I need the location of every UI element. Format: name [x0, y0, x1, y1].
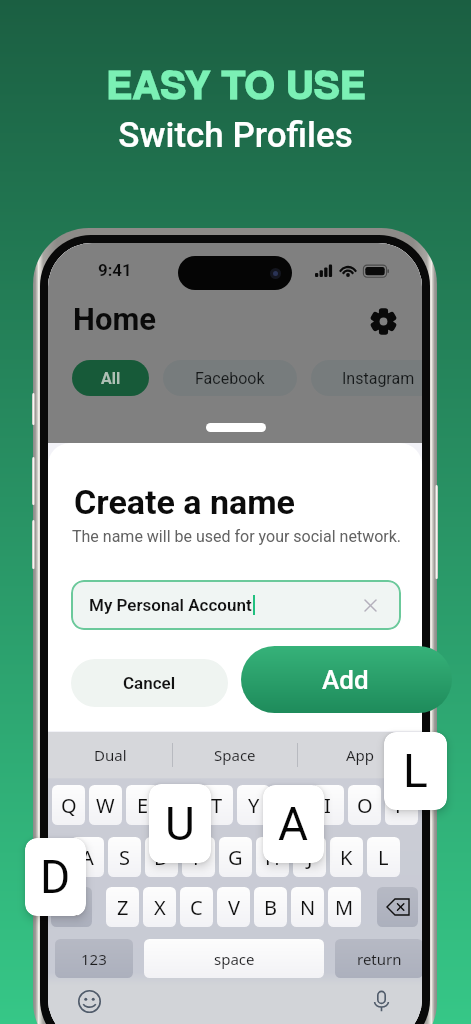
staticText: The name will be used for your social ne… [72, 527, 402, 546]
button[interactable]: 123 [55, 939, 133, 978]
staticText: Home [73, 301, 156, 337]
staticText: Y [248, 792, 260, 819]
staticText: Instagram [342, 369, 415, 388]
staticText: E [137, 792, 149, 819]
staticText: W [96, 792, 115, 819]
staticText: Z [117, 894, 129, 921]
button[interactable]: G [219, 837, 252, 877]
staticText: Dual [94, 745, 127, 765]
staticText: F [193, 844, 204, 871]
staticText: D [154, 844, 169, 871]
staticText: EASY TO USE [106, 55, 366, 111]
staticText: H [265, 844, 280, 871]
staticText: X [154, 894, 166, 921]
staticText: A [81, 844, 94, 871]
button[interactable]: Dual [48, 732, 172, 777]
staticText: J [307, 844, 313, 871]
button[interactable]: Emoji keyboard [76, 988, 102, 1014]
button[interactable]: F [182, 837, 215, 877]
button[interactable]: I [311, 785, 344, 825]
button[interactable]: Dictation [368, 988, 394, 1014]
staticText: U [165, 797, 195, 851]
button[interactable]: Space [173, 732, 297, 777]
button[interactable]: O [348, 785, 381, 825]
button[interactable]: space [144, 939, 324, 978]
button[interactable]: E [126, 785, 159, 825]
button[interactable]: T [200, 785, 233, 825]
button[interactable] [51, 887, 92, 927]
staticText: Cancel [123, 673, 176, 693]
button[interactable]: Facebook [163, 360, 297, 396]
button[interactable]: M [328, 887, 361, 927]
staticText: All [101, 369, 121, 388]
button[interactable]: R [163, 785, 196, 825]
button[interactable]: U [274, 785, 307, 825]
button[interactable]: Y [237, 785, 270, 825]
staticText: T [211, 792, 223, 819]
button[interactable]: All [72, 360, 149, 396]
button[interactable]: Q [52, 785, 85, 825]
staticText: 9:41 [98, 260, 132, 280]
button[interactable] [377, 887, 418, 927]
staticText: S [119, 844, 130, 871]
button[interactable]: V [217, 887, 250, 927]
button[interactable]: X [143, 887, 176, 927]
staticText: Switch Profiles [118, 115, 353, 156]
button[interactable]: U [149, 784, 211, 863]
staticText: C [190, 894, 203, 921]
button[interactable]: W [89, 785, 122, 825]
button[interactable]: L [384, 732, 447, 810]
button[interactable]: Instagram [311, 360, 422, 396]
button[interactable]: A [263, 785, 324, 863]
staticText: Add [322, 665, 369, 695]
staticText: space [214, 949, 255, 969]
staticText: I [324, 792, 331, 819]
staticText: O [357, 792, 373, 819]
button[interactable]: H [256, 837, 289, 877]
staticText: return [357, 949, 402, 969]
button[interactable]: J [293, 837, 326, 877]
staticText: K [340, 844, 353, 871]
button[interactable]: return [335, 939, 422, 978]
button[interactable]: D [25, 838, 86, 916]
staticText: Create a name [74, 482, 295, 522]
button[interactable]: N [291, 887, 324, 927]
staticText: M [335, 894, 354, 921]
button[interactable]: Add [241, 646, 452, 713]
staticText: My Personal Account [89, 595, 252, 615]
button[interactable]: P [385, 785, 418, 825]
staticText: N [300, 894, 316, 921]
button[interactable]: B [254, 887, 287, 927]
button[interactable]: App [298, 732, 422, 777]
staticText: D [40, 850, 71, 904]
staticText: P [395, 792, 408, 819]
button[interactable]: Settings [366, 304, 400, 338]
button[interactable]: Z [106, 887, 139, 927]
staticText: 123 [81, 949, 107, 969]
staticText: L [378, 844, 389, 871]
staticText: Space [214, 745, 256, 765]
staticText: A [278, 797, 309, 851]
staticText: V [228, 894, 240, 921]
button[interactable]: K [330, 837, 363, 877]
staticText: U [283, 792, 298, 819]
button[interactable]: My Personal Account [71, 580, 401, 630]
staticText: B [264, 894, 277, 921]
button[interactable]: L [367, 837, 400, 877]
staticText: Facebook [195, 369, 265, 388]
staticText: Q [61, 792, 77, 819]
staticText: L [403, 744, 428, 798]
staticText: App [346, 745, 375, 765]
button[interactable]: A [71, 837, 104, 877]
staticText: G [228, 844, 243, 871]
button[interactable]: D [145, 837, 178, 877]
button[interactable]: Cancel [71, 659, 228, 707]
button[interactable]: S [108, 837, 141, 877]
button[interactable]: C [180, 887, 213, 927]
